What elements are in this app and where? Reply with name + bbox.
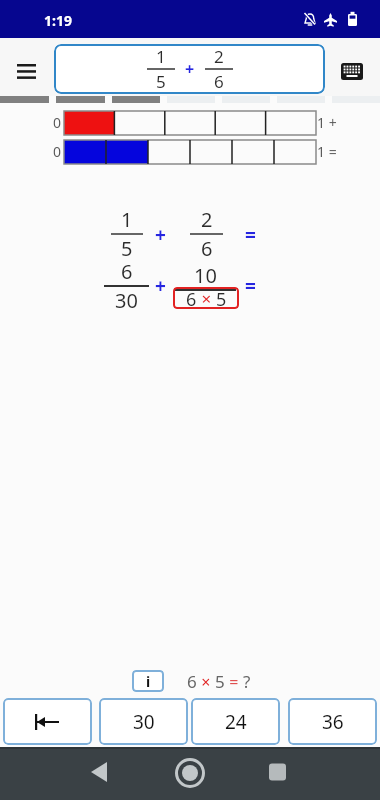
staticText: 30 bbox=[115, 287, 138, 314]
staticText: 1 = bbox=[317, 142, 337, 161]
staticText: 1 + bbox=[317, 113, 337, 132]
staticText: 6 bbox=[187, 670, 197, 693]
button[interactable]: 24 bbox=[191, 698, 280, 745]
staticText: + bbox=[185, 58, 195, 80]
staticText: 5 bbox=[121, 235, 133, 262]
button[interactable]: i bbox=[132, 670, 164, 692]
staticText: 6 bbox=[214, 70, 224, 93]
staticText: 5 bbox=[216, 287, 227, 309]
staticText: 1 bbox=[156, 45, 166, 68]
button[interactable]: 36 bbox=[288, 698, 377, 745]
staticText: × bbox=[197, 287, 216, 309]
staticText: × bbox=[197, 671, 215, 693]
button[interactable]: 30 bbox=[99, 698, 188, 745]
staticText: 36 bbox=[322, 709, 344, 735]
staticText: ? bbox=[243, 670, 251, 693]
staticText: 1:19 bbox=[44, 11, 72, 30]
staticText: 5 bbox=[215, 670, 225, 693]
staticText: 30 bbox=[133, 709, 155, 735]
staticText: i bbox=[146, 672, 151, 691]
button[interactable] bbox=[334, 55, 370, 87]
staticText: 2 bbox=[201, 206, 213, 233]
staticText: + bbox=[155, 222, 166, 248]
staticText: 24 bbox=[225, 709, 247, 735]
staticText: 6 bbox=[121, 258, 133, 285]
staticText: 1 bbox=[121, 206, 133, 233]
button[interactable] bbox=[3, 698, 92, 745]
staticText: 2 bbox=[214, 45, 224, 68]
button[interactable] bbox=[253, 747, 380, 800]
staticText: 5 bbox=[156, 70, 166, 93]
button[interactable] bbox=[0, 747, 126, 800]
button[interactable]: 1 bbox=[54, 44, 325, 94]
button[interactable] bbox=[126, 747, 253, 800]
staticText: = bbox=[245, 222, 256, 248]
staticText: = bbox=[245, 273, 256, 299]
staticText: 10 bbox=[194, 262, 217, 289]
staticText: 0 bbox=[53, 142, 62, 161]
staticText: + bbox=[155, 273, 166, 299]
button[interactable] bbox=[10, 55, 44, 83]
staticText: = bbox=[225, 671, 243, 693]
staticText: 6 bbox=[186, 287, 197, 309]
staticText: 0 bbox=[53, 113, 62, 132]
staticText: 6 bbox=[201, 235, 213, 262]
